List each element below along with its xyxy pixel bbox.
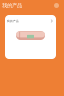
button[interactable]: 我的产品 (5, 15, 56, 27)
staticText: 我的产品 (2, 2, 22, 9)
staticText: 我的产品 (7, 19, 19, 23)
button[interactable]: Account (54, 3, 59, 8)
